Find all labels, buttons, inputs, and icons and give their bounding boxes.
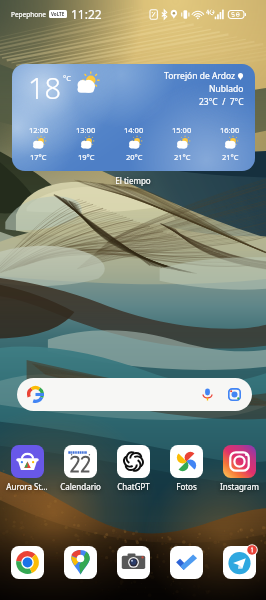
button[interactable]: Telegram (223, 546, 256, 579)
other: Google Lens (227, 387, 242, 402)
staticText: ChatGPT (117, 481, 150, 492)
staticText: °C (63, 73, 71, 83)
staticText: Torrejón de Ardoz (164, 70, 236, 82)
staticText: Fotos (176, 481, 197, 492)
staticText: El tiempo (0, 175, 266, 186)
button[interactable]: Fotos (160, 445, 213, 492)
other: Google (27, 386, 44, 403)
staticText: 20°C (126, 152, 143, 162)
staticText: 21°C (222, 152, 239, 162)
button[interactable]: Instagram (213, 445, 266, 492)
staticText: 19°C (78, 152, 95, 162)
staticText: Aurora St… (6, 481, 48, 492)
staticText: 11:22 (71, 6, 102, 22)
button[interactable]: Maps (64, 546, 97, 579)
staticText: Calendario (60, 481, 101, 492)
staticText: 14:00 (124, 125, 144, 135)
button[interactable]: Camera (117, 546, 150, 579)
staticText: Nublado (209, 83, 244, 95)
button[interactable]: Google (17, 378, 252, 411)
other: Voice search (200, 387, 215, 402)
button[interactable]: ChatGPT (107, 445, 160, 492)
staticText: Instagram (220, 481, 259, 492)
button[interactable]: Aurora St… (0, 445, 54, 492)
button[interactable]: Tasks (170, 546, 203, 579)
button[interactable]: 18 (12, 64, 255, 171)
staticText: Pepephone (11, 10, 46, 19)
button[interactable]: Calendario (54, 445, 107, 492)
staticText: 21°C (174, 152, 191, 162)
button[interactable]: Chrome (11, 546, 44, 579)
staticText: 23°C / 7°C (199, 96, 244, 108)
staticText: 15:00 (172, 125, 192, 135)
staticText: 13:00 (76, 125, 96, 135)
staticText: VoLTE (51, 11, 65, 17)
staticText: 18 (28, 68, 62, 107)
staticText: 12:00 (29, 125, 49, 135)
staticText: 16:00 (220, 125, 240, 135)
staticText: 17°C (30, 152, 47, 162)
